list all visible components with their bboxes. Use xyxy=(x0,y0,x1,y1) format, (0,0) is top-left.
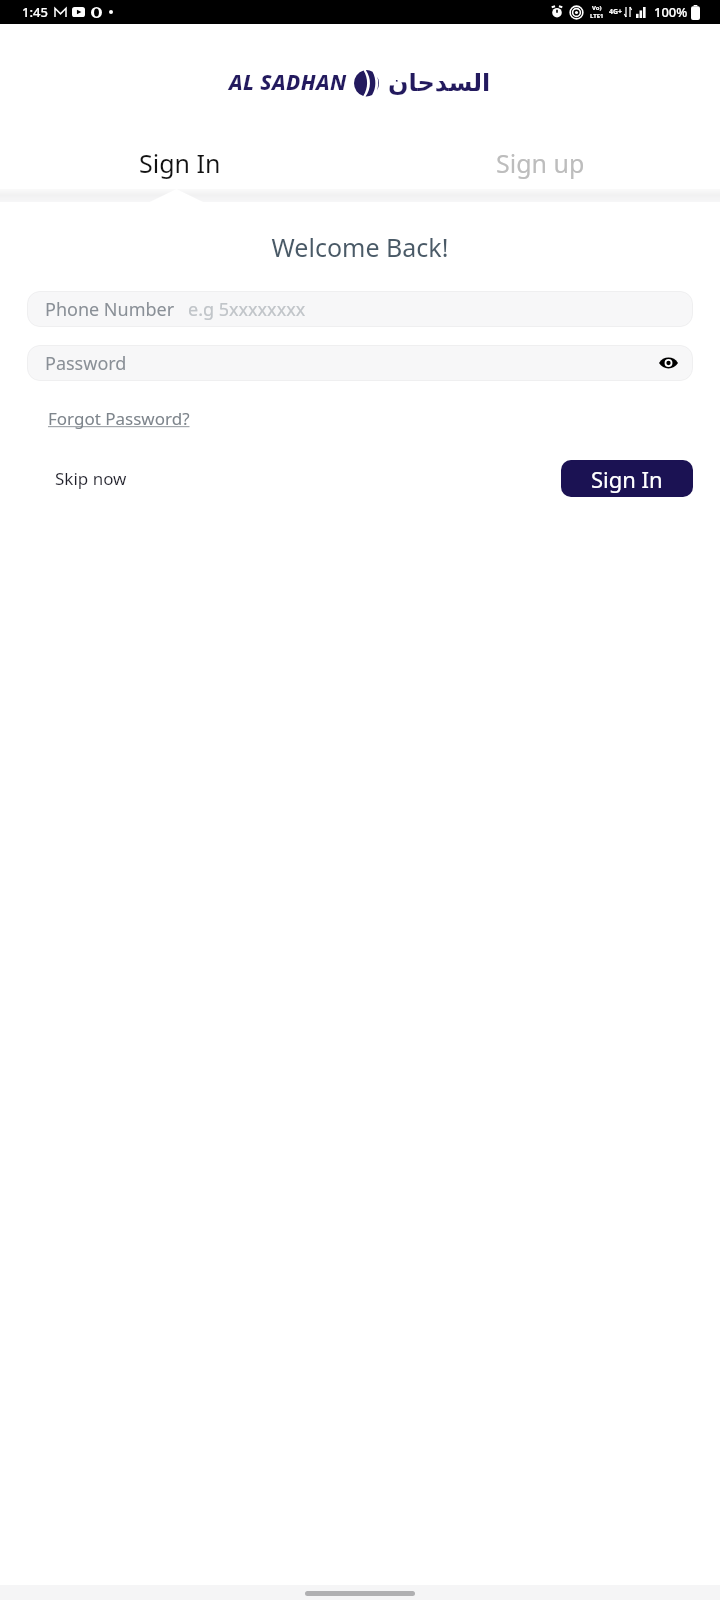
staticText: LTE1 xyxy=(590,12,604,20)
staticText: Sign In xyxy=(591,464,663,494)
staticText: AL SADHAN xyxy=(229,68,347,97)
button[interactable]: Sign In xyxy=(561,460,693,497)
staticText: 1:45 xyxy=(22,3,48,21)
button[interactable]: Phone Number xyxy=(27,291,693,327)
button[interactable]: Skip now xyxy=(49,461,133,496)
button[interactable]: Forgot Password? xyxy=(48,403,190,434)
button[interactable]: Sign up xyxy=(360,137,720,189)
staticText: 100% xyxy=(654,3,688,21)
button[interactable]: Show password xyxy=(657,352,679,374)
staticText: Welcome Back! xyxy=(0,230,720,264)
staticText: السدحان xyxy=(388,69,491,97)
staticText: Sign up xyxy=(496,146,585,180)
button[interactable]: Sign In xyxy=(0,137,360,189)
staticText: Phone Number xyxy=(45,297,175,322)
button[interactable]: Password xyxy=(27,345,693,381)
staticText: Password xyxy=(45,351,127,376)
staticText: Vo) xyxy=(592,4,602,12)
staticText: Forgot Password? xyxy=(48,407,190,430)
staticText: Skip now xyxy=(55,467,127,490)
staticText: Sign In xyxy=(139,146,221,180)
staticText: 4G+ xyxy=(609,7,623,17)
staticText: e.g 5xxxxxxxx xyxy=(188,297,306,322)
